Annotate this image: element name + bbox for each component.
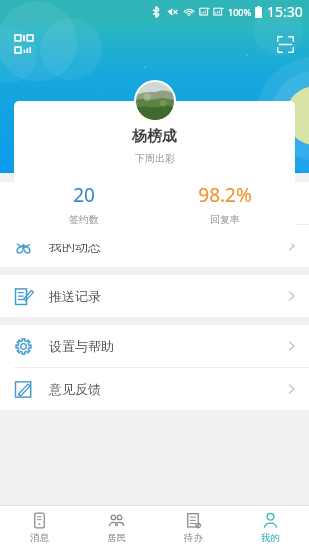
staticText: 签约数	[69, 213, 99, 226]
staticText: 消息	[30, 532, 49, 544]
staticText: 下周出彩	[135, 152, 175, 165]
staticText: 回复率	[210, 213, 240, 226]
button[interactable]: Scan	[270, 29, 300, 59]
staticText: 我的	[261, 532, 280, 544]
staticText: 居民	[107, 532, 126, 544]
button[interactable]: 我的动态	[0, 225, 309, 267]
button[interactable]: 意见反馈	[0, 368, 309, 410]
staticText: 推送记录	[49, 288, 101, 304]
button[interactable]: 推送记录	[0, 275, 309, 317]
staticText: 设置与帮助	[49, 338, 114, 354]
button[interactable]: 设置与帮助	[0, 325, 309, 367]
staticText: 我的团队	[49, 195, 101, 211]
button[interactable]: 我的	[232, 506, 309, 550]
staticText: 20	[73, 182, 95, 208]
staticText: 100%	[228, 6, 252, 18]
staticText: 15:30	[267, 2, 303, 21]
staticText: 意见反馈	[49, 381, 101, 397]
button[interactable]: 居民	[78, 506, 155, 550]
staticText: 98.2%	[198, 182, 252, 208]
button[interactable]: QR code	[9, 29, 39, 59]
button[interactable]: 我的团队	[0, 182, 309, 224]
staticText: 我的动态	[49, 238, 101, 254]
button[interactable]: Avatar	[136, 82, 174, 120]
button[interactable]: 消息	[0, 506, 78, 550]
staticText: 杨榜成	[132, 127, 177, 146]
staticText: 待办	[184, 532, 203, 544]
button[interactable]: 待办	[155, 506, 232, 550]
